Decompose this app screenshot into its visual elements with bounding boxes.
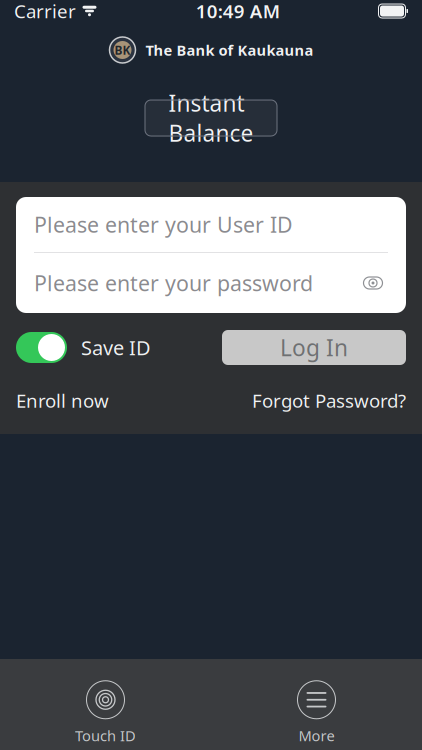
staticText: 10:49 AM — [196, 0, 280, 23]
staticText: Instant Balance — [168, 88, 253, 148]
staticText: Please enter your User ID — [34, 210, 293, 239]
button[interactable]: Save ID — [16, 332, 151, 363]
staticText: Enroll now — [16, 388, 109, 413]
staticText: Please enter your password — [34, 269, 313, 297]
staticText: Forgot Password? — [252, 388, 406, 413]
button[interactable]: Log In — [222, 330, 406, 365]
button[interactable]: Show password — [358, 268, 388, 298]
staticText: More — [298, 726, 334, 745]
staticText: Log In — [280, 332, 348, 362]
button[interactable]: Forgot Password? — [252, 388, 406, 413]
staticText: The Bank of Kaukauna — [145, 40, 313, 60]
button[interactable]: Instant Balance — [145, 100, 277, 136]
button[interactable]: More — [211, 680, 422, 745]
staticText: Touch ID — [75, 726, 136, 745]
staticText: BK — [114, 42, 130, 58]
button[interactable]: Touch ID — [0, 680, 211, 745]
button[interactable]: Enroll now — [16, 388, 109, 413]
staticText: Carrier — [14, 0, 76, 23]
staticText: Save ID — [81, 334, 151, 361]
